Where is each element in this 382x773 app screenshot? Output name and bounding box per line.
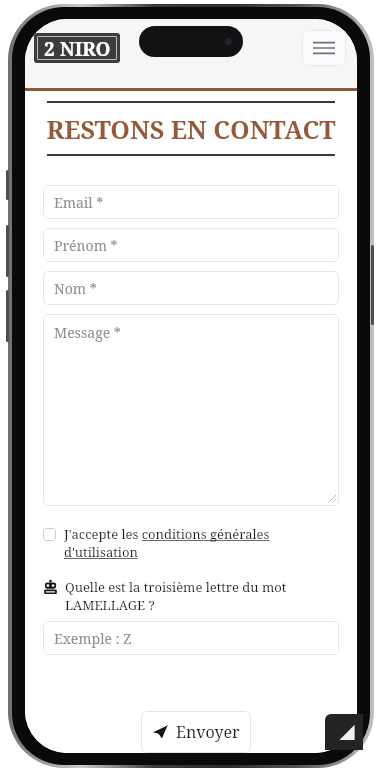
staticText: Envoyer [176,721,240,743]
button[interactable]: Menu [302,30,346,66]
staticText: Message * [54,323,121,342]
button[interactable]: J'accepte les conditions générales d'uti… [43,525,339,561]
button[interactable]: Prénom * [43,228,339,262]
button[interactable]: Nom * [43,271,339,305]
staticText: J'accepte les conditions générales d'uti… [64,525,339,561]
staticText: Nom * [54,279,97,298]
button[interactable]: Envoyer [141,711,251,753]
staticText: RESTONS EN CONTACT [33,112,349,146]
button[interactable]: Message * [43,314,339,506]
staticText: 2 NIRO [44,36,111,60]
button[interactable]: 2 NIRO logo [34,33,120,63]
button[interactable]: Exemple : Z [43,621,339,655]
button[interactable]: Email * [43,185,339,219]
staticText: Prénom * [54,236,118,255]
staticText: Quelle est la troisième lettre du mot LA… [65,578,339,614]
staticText: Exemple : Z [54,629,132,648]
staticText: Email * [54,193,104,212]
